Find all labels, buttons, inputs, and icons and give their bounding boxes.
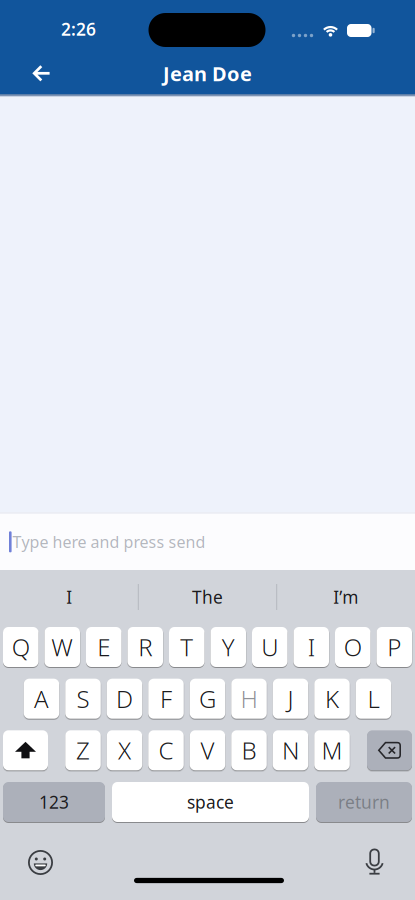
button[interactable]: I — [293, 627, 329, 667]
button[interactable]: E — [86, 627, 121, 667]
button[interactable]: K — [314, 679, 350, 719]
button[interactable]: Q — [3, 627, 38, 667]
button[interactable]: space — [112, 782, 309, 822]
button[interactable]: G — [190, 679, 225, 719]
button[interactable]: T — [169, 627, 204, 667]
staticText: X — [118, 734, 131, 766]
button[interactable]: D — [107, 679, 142, 719]
staticText: space — [187, 790, 234, 813]
staticText: 123 — [39, 790, 69, 813]
button[interactable]: N — [273, 730, 308, 770]
button[interactable]: Z — [65, 730, 101, 770]
staticText: M — [321, 734, 342, 766]
staticText: I — [308, 631, 315, 663]
button[interactable]: Shift — [3, 730, 48, 770]
staticText: N — [282, 734, 299, 766]
staticText: Y — [222, 631, 235, 663]
button[interactable]: The — [142, 575, 272, 619]
staticText: Jean Doe — [163, 60, 252, 87]
button[interactable]: C — [148, 730, 184, 770]
staticText: 2:26 — [61, 17, 96, 40]
staticText: A — [34, 683, 49, 715]
staticText: O — [344, 631, 362, 663]
button[interactable]: Type here and press send — [0, 514, 415, 570]
button[interactable]: B — [231, 730, 267, 770]
button[interactable]: S — [65, 679, 101, 719]
button[interactable]: I’m — [281, 575, 411, 619]
button[interactable]: M — [314, 730, 350, 770]
staticText: T — [180, 631, 193, 663]
staticText: E — [97, 631, 110, 663]
button[interactable]: O — [335, 627, 370, 667]
staticText: U — [261, 631, 278, 663]
button[interactable]: return — [316, 782, 412, 822]
button[interactable]: F — [148, 679, 184, 719]
button[interactable]: Emoji — [28, 850, 53, 875]
button[interactable]: Delete — [367, 730, 412, 770]
button[interactable]: J — [273, 679, 308, 719]
button[interactable]: Y — [210, 627, 246, 667]
button[interactable]: P — [376, 627, 412, 667]
button[interactable]: I — [4, 575, 134, 619]
staticText: D — [116, 683, 133, 715]
staticText: The — [192, 585, 223, 608]
staticText: R — [138, 631, 152, 663]
button[interactable]: Dictation — [365, 848, 384, 874]
button[interactable]: X — [107, 730, 142, 770]
staticText: L — [367, 683, 379, 715]
staticText: B — [241, 734, 256, 766]
staticText: C — [158, 734, 173, 766]
staticText: Z — [76, 734, 90, 766]
staticText: I’m — [333, 585, 358, 608]
staticText: I — [66, 585, 72, 608]
staticText: Q — [12, 631, 30, 663]
staticText: J — [287, 683, 293, 715]
staticText: Type here and press send — [12, 531, 205, 552]
staticText: G — [199, 683, 216, 715]
staticText: P — [387, 631, 401, 663]
staticText: K — [325, 683, 339, 715]
staticText: S — [76, 683, 89, 715]
staticText: return — [338, 790, 390, 813]
button[interactable]: 123 — [3, 782, 105, 822]
staticText: V — [200, 734, 214, 766]
button[interactable]: A — [24, 679, 59, 719]
button[interactable]: U — [252, 627, 287, 667]
button[interactable]: H — [231, 679, 267, 719]
staticText: W — [51, 631, 73, 663]
button[interactable]: L — [356, 679, 391, 719]
staticText: F — [160, 683, 172, 715]
button[interactable]: R — [127, 627, 163, 667]
button[interactable]: V — [190, 730, 225, 770]
button[interactable]: W — [44, 627, 80, 667]
button[interactable]: Back — [19, 56, 63, 90]
staticText: H — [240, 683, 257, 715]
